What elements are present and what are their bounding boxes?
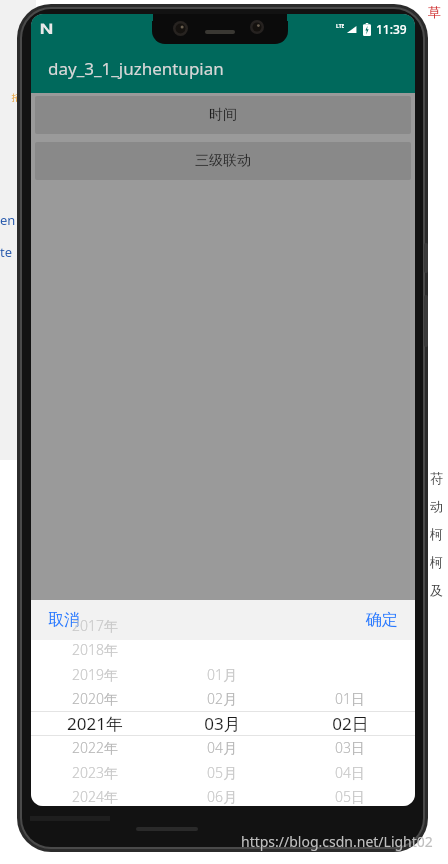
- button[interactable]: 03日: [296, 735, 404, 760]
- button[interactable]: 01月: [168, 662, 276, 687]
- button[interactable]: 04日: [296, 760, 404, 785]
- button[interactable]: 02日: [296, 711, 404, 736]
- staticText: 2021年: [67, 712, 123, 735]
- button[interactable]: 2019年: [41, 662, 149, 687]
- staticText: 04月: [207, 738, 237, 757]
- button[interactable]: 2018年: [41, 637, 149, 662]
- button[interactable]: 三级联动: [35, 142, 411, 180]
- button[interactable]: 01日: [296, 686, 404, 711]
- button[interactable]: 2024年: [41, 784, 149, 806]
- staticText: 取消: [48, 610, 80, 630]
- button[interactable]: 确定: [349, 602, 415, 638]
- button[interactable]: 03月: [168, 711, 276, 736]
- staticText: 2023年: [72, 763, 118, 782]
- staticText: 2024年: [72, 787, 118, 806]
- staticText: 2020年: [72, 689, 118, 708]
- staticText: 05月: [207, 763, 237, 782]
- staticText: 05日: [335, 787, 365, 806]
- staticText: 招: [12, 92, 21, 103]
- staticText: en: [0, 211, 16, 229]
- staticText: 确定: [366, 610, 398, 630]
- staticText: 苻: [430, 470, 443, 486]
- staticText: 03月: [204, 712, 241, 735]
- staticText: 柯: [430, 526, 443, 542]
- staticText: 02月: [207, 689, 237, 708]
- staticText: 草: [428, 4, 441, 20]
- button[interactable]: 05日: [296, 784, 404, 806]
- button[interactable]: 2021年: [41, 711, 149, 736]
- staticText: 2018年: [72, 640, 118, 659]
- button[interactable]: 2023年: [41, 760, 149, 785]
- staticText: day_3_1_juzhentupian: [48, 57, 224, 80]
- staticText: 及: [430, 582, 443, 598]
- button[interactable]: 02月: [168, 686, 276, 711]
- button[interactable]: 06月: [168, 784, 276, 806]
- button[interactable]: 05月: [168, 760, 276, 785]
- button[interactable]: 时间: [35, 96, 411, 134]
- button[interactable]: 2020年: [41, 686, 149, 711]
- button[interactable]: 取消: [31, 602, 97, 638]
- staticText: 2019年: [72, 665, 118, 684]
- staticText: 03日: [335, 738, 365, 757]
- staticText: 02日: [332, 712, 369, 735]
- staticText: 11:39: [376, 21, 407, 37]
- staticText: 2017年: [72, 616, 118, 635]
- staticText: 时间: [209, 106, 237, 124]
- staticText: 04日: [335, 763, 365, 782]
- button[interactable]: 2017年: [41, 613, 149, 638]
- staticText: LTE: [336, 23, 345, 30]
- button[interactable]: 04月: [168, 735, 276, 760]
- button[interactable]: 2022年: [41, 735, 149, 760]
- staticText: 01日: [335, 689, 365, 708]
- staticText: 2022年: [72, 738, 118, 757]
- staticText: 动: [430, 498, 443, 514]
- staticText: 06月: [207, 787, 237, 806]
- staticText: https://blog.csdn.net/Light02: [241, 832, 433, 851]
- staticText: te: [0, 243, 13, 261]
- staticText: 三级联动: [195, 152, 251, 170]
- staticText: 01月: [207, 665, 237, 684]
- staticText: 柯: [430, 554, 443, 570]
